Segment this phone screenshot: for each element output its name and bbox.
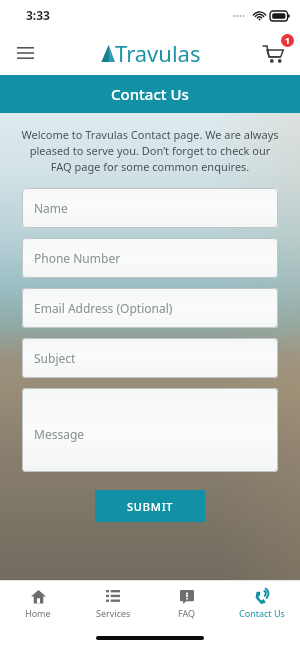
staticText: 1 bbox=[285, 35, 290, 47]
staticText: Name bbox=[34, 200, 68, 216]
staticText: Email Address (Optional) bbox=[34, 300, 173, 316]
button[interactable]: Cart bbox=[256, 35, 292, 71]
staticText: Subject bbox=[34, 350, 76, 366]
button[interactable]: Email Address (Optional) bbox=[22, 288, 278, 328]
button[interactable]: Phone Number bbox=[22, 238, 278, 278]
staticText: Home bbox=[25, 607, 51, 619]
staticText: Services bbox=[96, 607, 131, 619]
button[interactable]: FAQ bbox=[151, 581, 223, 627]
button[interactable]: Message bbox=[22, 388, 278, 472]
staticText: Message bbox=[34, 426, 85, 442]
button[interactable]: Services bbox=[77, 581, 149, 627]
staticText: 3:33 bbox=[26, 7, 50, 23]
button[interactable]: Subject bbox=[22, 338, 278, 378]
button[interactable]: Travulas bbox=[100, 38, 201, 68]
button[interactable]: Home bbox=[2, 581, 74, 627]
staticText: FAQ bbox=[178, 607, 196, 619]
button[interactable]: Name bbox=[22, 188, 278, 228]
staticText: Phone Number bbox=[34, 250, 121, 266]
staticText: SUBMIT bbox=[127, 499, 174, 514]
button[interactable]: Contact Us bbox=[226, 581, 298, 627]
button[interactable]: SUBMIT bbox=[95, 490, 205, 522]
staticText: Contact Us bbox=[111, 84, 189, 104]
staticText: Travulas bbox=[115, 38, 201, 68]
staticText: Welcome to Travulas Contact page. We are… bbox=[20, 127, 280, 174]
button[interactable]: Menu bbox=[8, 36, 42, 70]
staticText: Contact Us bbox=[239, 607, 285, 619]
